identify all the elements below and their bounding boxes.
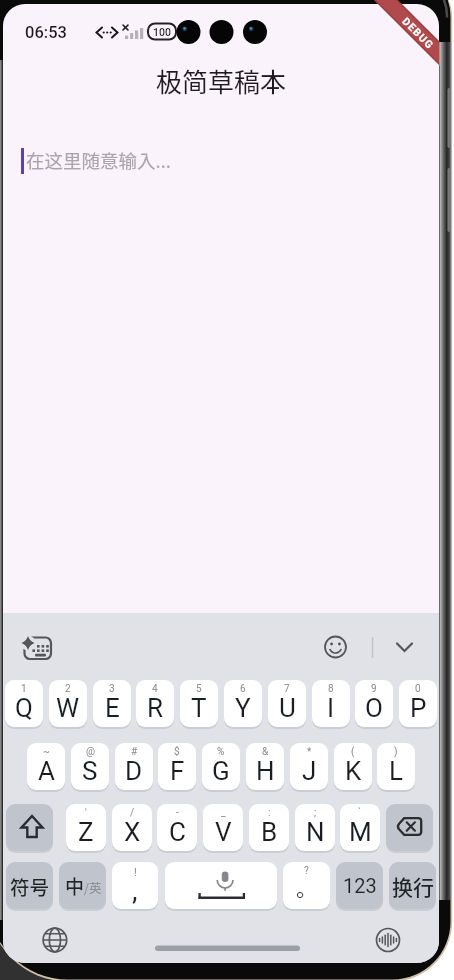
button[interactable]	[355, 680, 393, 727]
staticText: K	[345, 756, 362, 786]
staticText: 100	[153, 26, 171, 38]
button[interactable]	[389, 862, 436, 909]
button[interactable]	[136, 680, 174, 727]
staticText: G	[212, 756, 230, 786]
staticText: 中	[65, 872, 85, 900]
button[interactable]	[320, 631, 351, 663]
staticText: 6	[240, 683, 246, 695]
staticText: ;	[314, 807, 317, 819]
staticText: W	[56, 693, 80, 723]
button[interactable]	[224, 680, 262, 727]
button[interactable]	[372, 924, 404, 956]
button[interactable]	[165, 862, 277, 909]
staticText: 极简草稿本	[156, 62, 287, 100]
button[interactable]	[157, 804, 197, 851]
staticText: 06:53	[25, 23, 67, 42]
staticText: D	[125, 756, 143, 786]
staticText: R	[147, 693, 164, 723]
staticText: ~	[43, 746, 50, 758]
button[interactable]	[295, 804, 335, 851]
staticText: #	[131, 746, 138, 758]
button[interactable]	[27, 743, 65, 790]
staticText: T	[191, 693, 207, 723]
staticText: /英	[84, 878, 102, 896]
button[interactable]	[6, 804, 53, 851]
button[interactable]	[340, 804, 380, 851]
staticText: E	[105, 693, 120, 723]
staticText: L	[389, 756, 404, 786]
button[interactable]	[18, 631, 57, 665]
button[interactable]	[336, 862, 383, 909]
button[interactable]	[390, 633, 419, 661]
staticText: ,	[132, 874, 138, 907]
button[interactable]	[93, 680, 131, 727]
button[interactable]	[49, 680, 87, 727]
staticText: I	[327, 693, 335, 723]
staticText: 1	[21, 683, 27, 695]
button[interactable]	[334, 743, 372, 790]
staticText: Z	[78, 817, 94, 847]
button[interactable]	[59, 862, 106, 909]
staticText: $	[174, 746, 180, 758]
button[interactable]	[112, 862, 158, 909]
staticText: V	[215, 817, 232, 847]
staticText: M	[349, 817, 372, 847]
staticText: 符号	[10, 872, 50, 900]
button[interactable]	[9, 136, 433, 186]
staticText: (	[351, 746, 355, 758]
staticText: *	[307, 746, 312, 758]
staticText: %	[217, 746, 225, 758]
staticText: !	[134, 866, 137, 879]
button[interactable]	[112, 804, 152, 851]
button[interactable]	[71, 743, 109, 790]
staticText: C	[169, 817, 186, 847]
staticText: :	[268, 807, 271, 819]
staticText: U	[279, 693, 296, 723]
staticText: S	[82, 756, 98, 786]
staticText: `	[358, 807, 362, 819]
button[interactable]	[377, 743, 415, 790]
staticText: DEBUG	[400, 15, 437, 52]
staticText: X	[124, 817, 141, 847]
staticText: /	[130, 807, 135, 819]
button[interactable]	[6, 862, 53, 909]
staticText: 0	[415, 683, 421, 695]
button[interactable]	[283, 862, 330, 909]
staticText: Y	[235, 693, 251, 723]
staticText: _	[221, 807, 226, 819]
button[interactable]	[66, 804, 106, 851]
button[interactable]	[249, 804, 289, 851]
staticText: 4	[152, 683, 158, 695]
button[interactable]	[203, 804, 243, 851]
button[interactable]	[39, 924, 71, 956]
button[interactable]	[246, 743, 284, 790]
staticText: Q	[15, 693, 33, 723]
button[interactable]	[399, 680, 437, 727]
staticText: &	[262, 746, 269, 758]
staticText: 换行	[392, 871, 434, 901]
staticText: 123	[343, 874, 377, 897]
button[interactable]	[180, 680, 218, 727]
staticText: J	[302, 756, 317, 786]
staticText: F	[170, 756, 185, 786]
staticText: B	[261, 817, 278, 847]
button[interactable]	[158, 743, 196, 790]
button[interactable]	[115, 743, 153, 790]
button[interactable]	[290, 743, 328, 790]
staticText: P	[410, 693, 427, 723]
staticText: 5	[196, 683, 202, 695]
staticText: H	[256, 756, 275, 786]
staticText: 7	[284, 683, 290, 695]
staticText: @	[86, 746, 95, 758]
button[interactable]	[202, 743, 240, 790]
button[interactable]	[386, 804, 433, 851]
button[interactable]	[312, 680, 350, 727]
staticText: N	[306, 817, 325, 847]
button[interactable]	[268, 680, 306, 727]
staticText: 在这里随意输入...	[26, 147, 171, 174]
staticText: 9	[371, 683, 377, 695]
staticText: 8	[328, 683, 334, 695]
staticText: A	[38, 756, 55, 786]
button[interactable]	[5, 680, 43, 727]
staticText: 3	[109, 683, 115, 695]
